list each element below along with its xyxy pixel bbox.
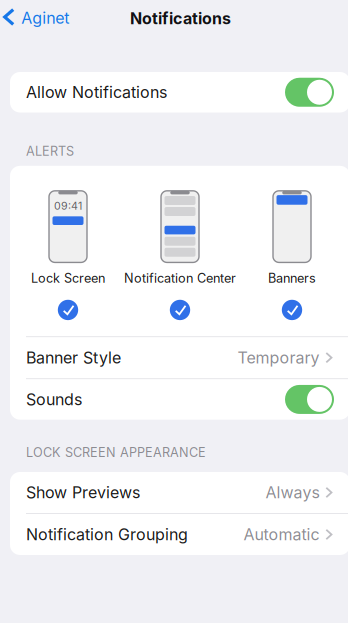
button[interactable]: Aginet — [0, 3, 69, 31]
button[interactable]: Notification Grouping — [10, 514, 348, 555]
staticText: Always — [265, 483, 319, 502]
staticText: Lock Screen — [31, 270, 105, 286]
staticText: Show Previews — [26, 483, 140, 502]
button[interactable]: Notification Center — [124, 191, 236, 320]
staticText: Notification Center — [124, 270, 236, 286]
staticText: ALERTS — [26, 143, 74, 159]
staticText: Aginet — [21, 8, 69, 28]
staticText: Allow Notifications — [26, 83, 167, 102]
button[interactable]: Show Previews — [10, 472, 348, 513]
button[interactable]: Sounds — [10, 379, 348, 420]
button[interactable]: Allow Notifications — [10, 72, 348, 112]
staticText: Sounds — [26, 390, 82, 409]
staticText: 09:41 — [54, 199, 82, 212]
button[interactable]: Banners — [236, 191, 348, 320]
staticText: Banner Style — [26, 348, 121, 367]
staticText: Notifications — [130, 9, 231, 28]
staticText: Banners — [268, 270, 316, 286]
staticText: LOCK SCREEN APPEARANCE — [26, 445, 206, 460]
button[interactable]: Banner Style — [10, 337, 348, 378]
staticText: Automatic — [243, 525, 319, 544]
staticText: Temporary — [237, 348, 319, 367]
staticText: Notification Grouping — [26, 525, 188, 544]
button[interactable]: 09:41 — [12, 191, 124, 320]
